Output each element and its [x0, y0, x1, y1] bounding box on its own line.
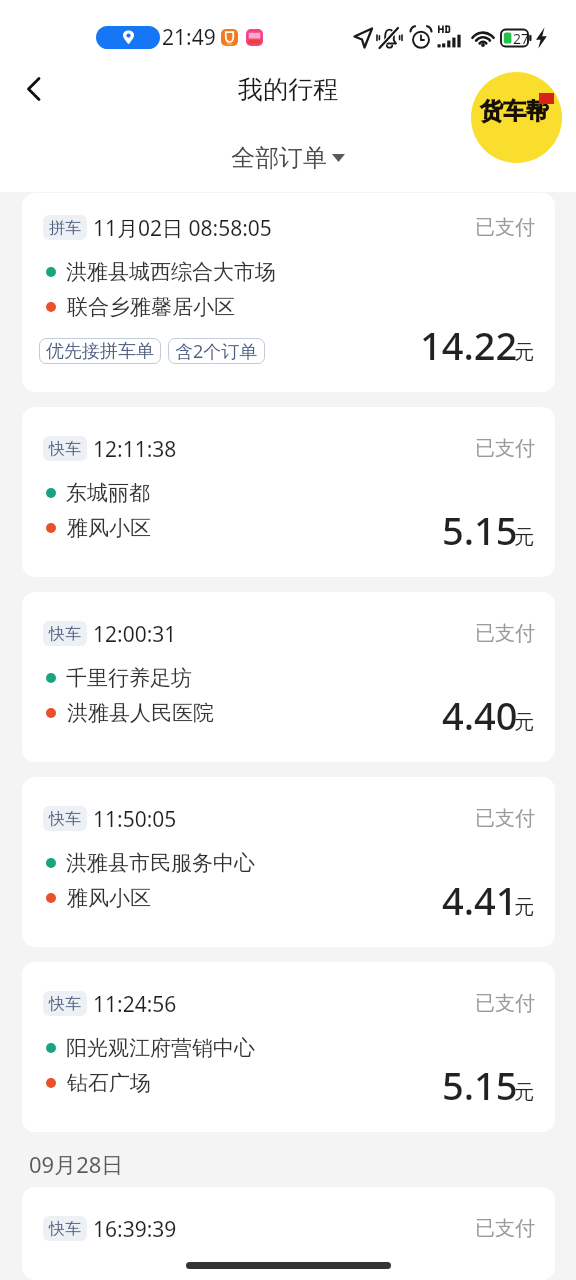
- staticText: 21:49: [162, 23, 216, 52]
- staticText: 钻石广场: [67, 1070, 151, 1096]
- staticText: 元: [514, 895, 534, 920]
- staticText: 4.41: [442, 874, 518, 926]
- staticText: 快车: [49, 624, 81, 644]
- staticText: 拼车: [49, 218, 81, 238]
- staticText: 已支付: [475, 215, 535, 240]
- button[interactable]: 快车: [22, 962, 555, 1132]
- staticText: 元: [514, 340, 534, 365]
- button[interactable]: 快车: [22, 1187, 555, 1280]
- staticText: 含2个订单: [175, 339, 258, 364]
- staticText: 元: [514, 710, 534, 735]
- button[interactable]: Back: [12, 66, 58, 112]
- staticText: 洪雅县市民服务中心: [66, 850, 255, 876]
- staticText: 已支付: [475, 621, 535, 646]
- staticText: 4.40: [442, 689, 518, 741]
- staticText: 货车帮: [480, 97, 549, 126]
- staticText: 东城丽都: [66, 480, 150, 506]
- staticText: 14.22: [420, 319, 518, 371]
- staticText: 全部订单: [231, 143, 327, 173]
- staticText: 阳光观江府营销中心: [66, 1035, 255, 1061]
- staticText: 16:39:39: [93, 1215, 177, 1241]
- staticText: 已支付: [475, 436, 535, 461]
- staticText: 09月28日: [29, 1149, 124, 1179]
- staticText: 洪雅县城西综合大市场: [66, 259, 276, 285]
- staticText: 快车: [49, 809, 81, 829]
- staticText: 雅风小区: [67, 885, 151, 911]
- staticText: 联合乡雅馨居小区: [67, 294, 235, 320]
- staticText: 27: [513, 29, 530, 48]
- staticText: 快车: [49, 994, 81, 1014]
- button[interactable]: Brand logo: [471, 72, 562, 163]
- button[interactable]: 快车: [22, 777, 555, 947]
- staticText: 12:00:31: [93, 620, 177, 646]
- staticText: 5.15: [442, 1059, 518, 1111]
- button[interactable]: 全部订单: [227, 141, 349, 175]
- staticText: 11:50:05: [93, 805, 177, 831]
- button[interactable]: 快车: [22, 407, 555, 577]
- button[interactable]: 快车: [22, 592, 555, 762]
- staticText: 12:11:38: [93, 435, 177, 461]
- staticText: 快车: [49, 1219, 81, 1239]
- staticText: 已支付: [475, 991, 535, 1016]
- staticText: 元: [514, 1080, 534, 1105]
- staticText: 雅风小区: [67, 515, 151, 541]
- staticText: 11月02日 08:58:05: [93, 214, 272, 240]
- staticText: 已支付: [475, 1216, 535, 1241]
- staticText: 元: [514, 525, 534, 550]
- staticText: 快车: [49, 439, 81, 459]
- staticText: 已支付: [475, 806, 535, 831]
- staticText: 11:24:56: [93, 990, 177, 1016]
- staticText: 5.15: [442, 504, 518, 556]
- button[interactable]: 拼车: [22, 193, 555, 392]
- staticText: 千里行养足坊: [66, 665, 192, 691]
- staticText: 洪雅县人民医院: [67, 700, 214, 726]
- staticText: 我的行程: [238, 74, 338, 105]
- staticText: 优先接拼车单: [46, 340, 154, 363]
